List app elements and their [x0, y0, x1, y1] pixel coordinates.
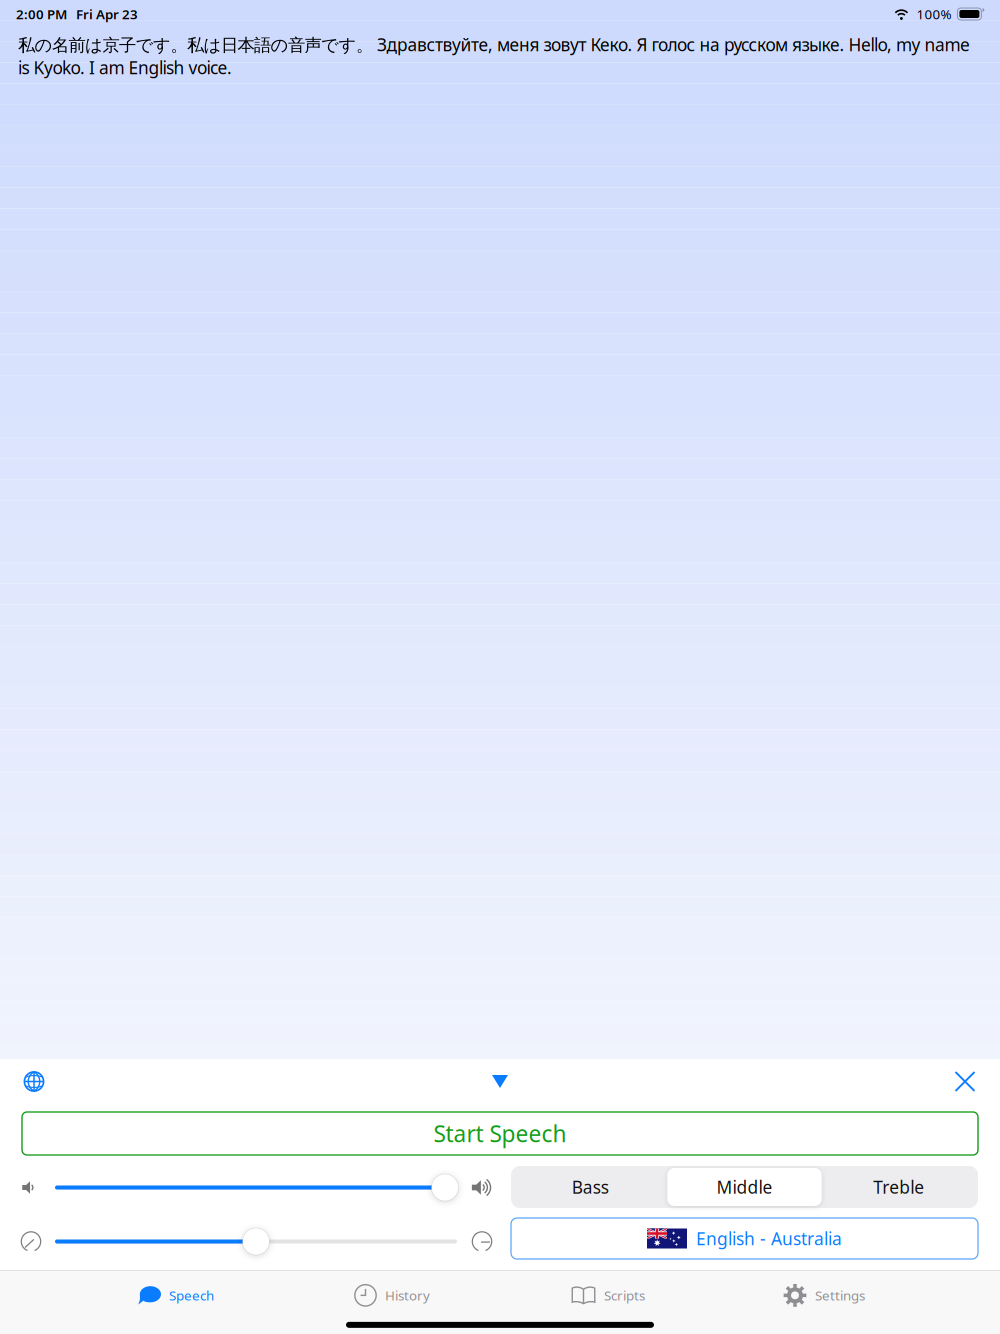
button[interactable]: Language [12, 1059, 56, 1103]
staticText: Bass [572, 1175, 609, 1198]
staticText: Fri Apr 23 [76, 5, 138, 23]
button[interactable]: Scripts [500, 1271, 716, 1320]
staticText: Settings [815, 1286, 865, 1304]
staticText: Speech [169, 1286, 214, 1304]
button[interactable]: Bass [513, 1168, 667, 1206]
staticText: English - Australia [696, 1227, 842, 1250]
button[interactable]: Treble [822, 1168, 976, 1206]
staticText: Scripts [604, 1286, 645, 1304]
staticText: 100% [916, 5, 951, 23]
staticText: Middle [716, 1175, 772, 1198]
button[interactable]: English - Australia [511, 1218, 978, 1259]
button[interactable]: Collapse panel [478, 1059, 522, 1103]
button[interactable]: Middle [667, 1168, 822, 1206]
button[interactable]: Speech [68, 1271, 284, 1320]
button[interactable]: Close [943, 1059, 987, 1103]
button[interactable]: Settings [716, 1271, 932, 1320]
staticText: Start Speech [433, 1118, 566, 1148]
staticText: 2:00 PM [16, 5, 67, 23]
staticText: 私の名前は京子です。私は日本語の音声です。 Здравствуйте, меня… [18, 33, 970, 79]
button[interactable]: History [284, 1271, 500, 1320]
staticText: Treble [873, 1175, 924, 1198]
button[interactable]: Start Speech [22, 1112, 978, 1155]
staticText: History [385, 1286, 430, 1304]
